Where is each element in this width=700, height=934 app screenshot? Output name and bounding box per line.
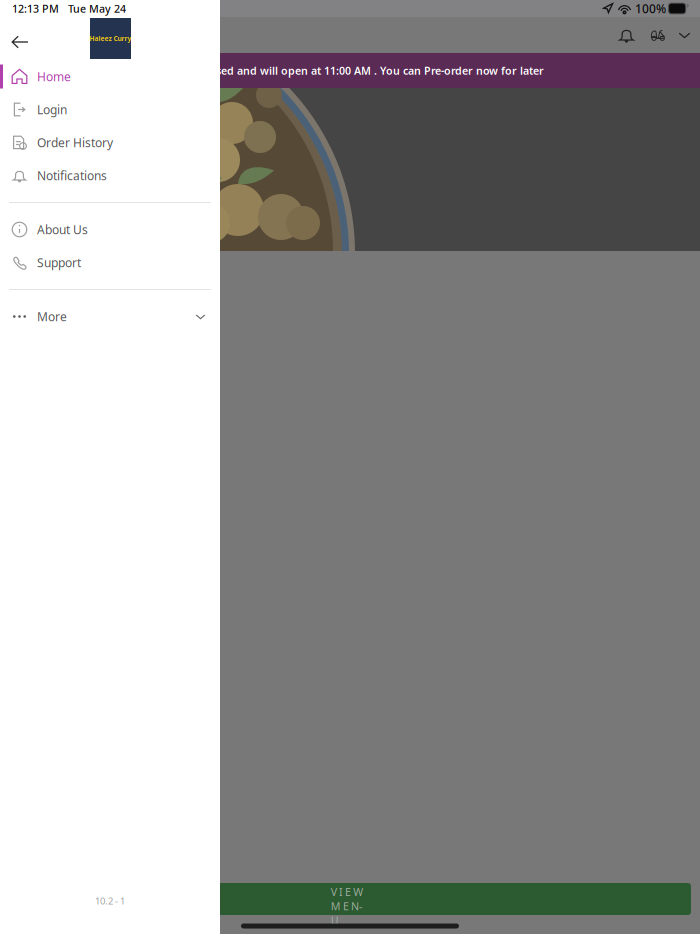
staticText: Tue May 24: [68, 1, 126, 16]
button[interactable]: Order History: [0, 126, 220, 159]
button[interactable]: Back: [6, 28, 34, 56]
staticText: 12:13 PM: [12, 1, 59, 16]
staticText: Notifications: [37, 167, 107, 183]
button[interactable]: Notifications: [0, 159, 220, 192]
button[interactable]: Login: [0, 93, 220, 126]
staticText: Support: [37, 254, 81, 270]
staticText: Haleez Curry: [89, 34, 131, 43]
staticText: Home: [37, 68, 71, 84]
button[interactable]: More: [0, 300, 220, 333]
button[interactable]: Support: [0, 246, 220, 279]
staticText: 100%: [635, 0, 666, 16]
button[interactable]: About Us: [0, 213, 220, 246]
staticText: Order History: [37, 134, 113, 150]
staticText: About Us: [37, 221, 88, 237]
staticText: Login: [37, 101, 67, 117]
staticText: VIEW MENU: [331, 885, 369, 913]
staticText: 10.2 - 1: [95, 895, 125, 907]
staticText: Restaurant is closed and will open at 11…: [131, 63, 544, 78]
staticText: More: [37, 308, 67, 324]
button[interactable]: Home: [0, 60, 220, 93]
